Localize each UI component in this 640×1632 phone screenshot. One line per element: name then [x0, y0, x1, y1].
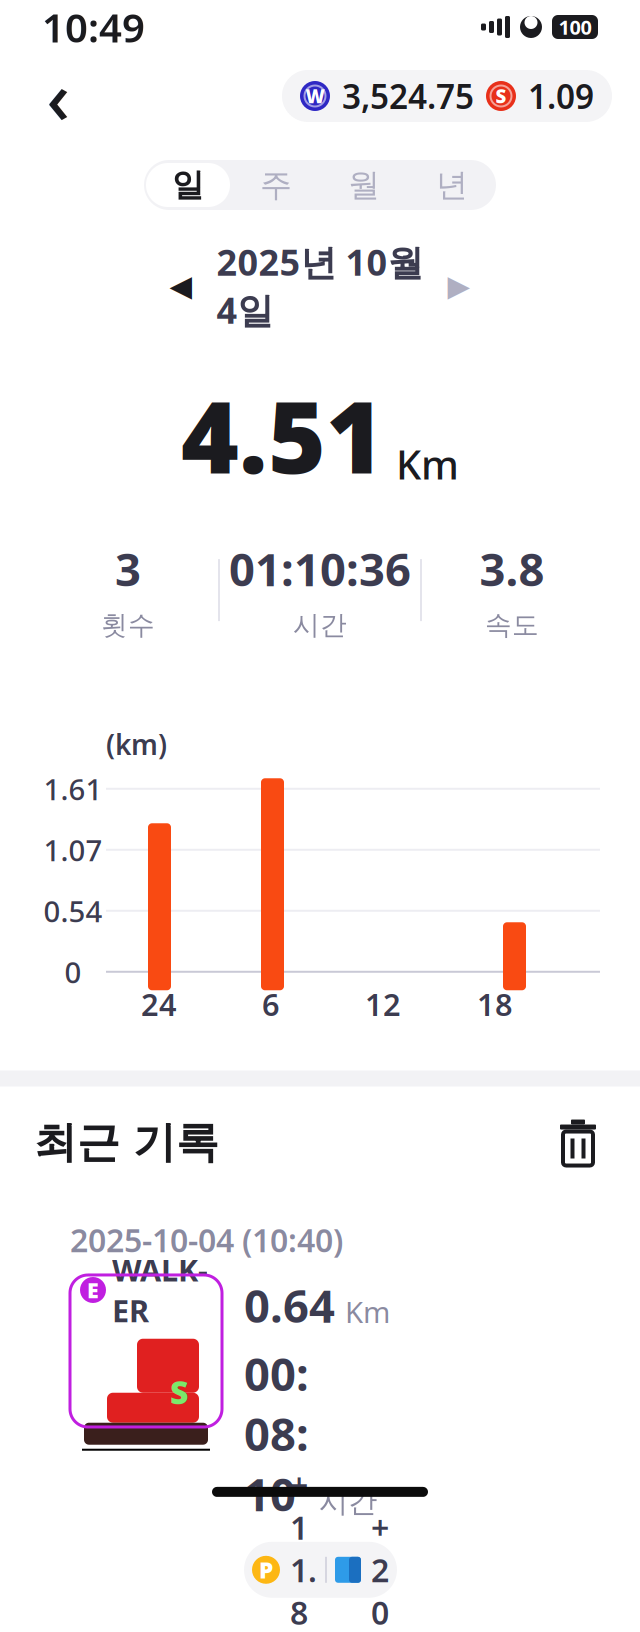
staticText: 시간 [319, 1484, 377, 1520]
staticText: 0 [64, 952, 81, 991]
button[interactable]: 월 [320, 161, 408, 209]
staticText: 100 [558, 14, 591, 40]
staticText: +20 [371, 1506, 389, 1632]
button[interactable]: Wallet balance [282, 70, 612, 122]
staticText: 최근 기록 [34, 1116, 219, 1169]
staticText: 속도 [485, 609, 539, 642]
staticText: ▶ [447, 269, 470, 302]
staticText: 주 [260, 165, 292, 205]
staticText: ◀ [169, 269, 192, 302]
staticText: +11.84 [290, 1464, 317, 1632]
staticText: ‹ [46, 48, 69, 144]
button[interactable]: Back [28, 66, 88, 126]
button[interactable]: 일 [144, 161, 232, 209]
staticText: 2025년 10월 4일 [216, 238, 423, 334]
staticText: (km) [106, 726, 167, 763]
staticText: S [495, 84, 506, 108]
staticText: 12 [365, 984, 401, 1024]
staticText: 시간 [293, 609, 347, 642]
staticText: 6 [262, 984, 280, 1024]
staticText: 1.61 [43, 769, 102, 808]
staticText: 4.51 [181, 370, 384, 501]
staticText: P [259, 1555, 273, 1585]
staticText: WALKER [112, 1249, 208, 1331]
staticText: E [87, 1276, 99, 1304]
staticText: 일 [172, 165, 204, 205]
staticText: 0.64 [244, 1275, 335, 1335]
staticText: S [170, 1370, 188, 1413]
button[interactable]: 년 [408, 161, 496, 209]
staticText: W [305, 84, 324, 108]
staticText: 18 [477, 984, 513, 1024]
staticText: 10:49 [42, 0, 145, 53]
staticText: 횟수 [101, 609, 155, 642]
button[interactable]: Delete records [550, 1114, 606, 1170]
staticText: 3,524.75 [342, 74, 474, 118]
button[interactable]: 2025-10-04 (10:40) [44, 1194, 596, 1624]
staticText: 01:10:36 [229, 539, 411, 599]
staticText: 년 [436, 165, 468, 205]
staticText: 3.8 [479, 539, 544, 599]
button[interactable]: 주 [232, 161, 320, 209]
staticText: 24 [141, 984, 177, 1024]
staticText: 00:08:10 [244, 1343, 309, 1524]
staticText: 3 [115, 539, 141, 599]
staticText: 1.09 [528, 74, 594, 118]
button[interactable]: Next day [435, 264, 483, 308]
staticText: Km [396, 437, 459, 491]
button[interactable]: Previous day [157, 264, 205, 308]
staticText: 0.54 [43, 891, 102, 930]
staticText: 월 [348, 165, 380, 205]
staticText: 2025-10-04 (10:40) [70, 1218, 343, 1261]
staticText: 1.07 [43, 830, 102, 869]
staticText: Km [345, 1292, 390, 1331]
